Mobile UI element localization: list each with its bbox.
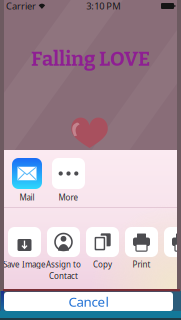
button[interactable]: Copy (86, 227, 119, 273)
button[interactable]: More actions (164, 227, 181, 273)
button[interactable]: More (52, 158, 85, 203)
staticText: Print (132, 259, 150, 270)
staticText: Copy (93, 259, 112, 270)
staticText: More (58, 192, 78, 203)
staticText: Cancel (68, 293, 108, 310)
staticText: Contact (49, 271, 78, 281)
staticText: Mail (19, 192, 34, 203)
staticText: Falling LOVE (31, 47, 150, 71)
button[interactable]: Assign to Contact (47, 227, 80, 273)
staticText: Carrier (6, 0, 36, 12)
staticText: Save Image (3, 259, 46, 270)
staticText: 3:10 PM (86, 0, 120, 12)
button[interactable]: Print (125, 227, 158, 273)
button[interactable]: Save Image (8, 227, 41, 273)
staticText: Assign to (46, 259, 81, 270)
button[interactable]: Mail (12, 158, 42, 203)
button[interactable]: Cancel (4, 292, 173, 310)
